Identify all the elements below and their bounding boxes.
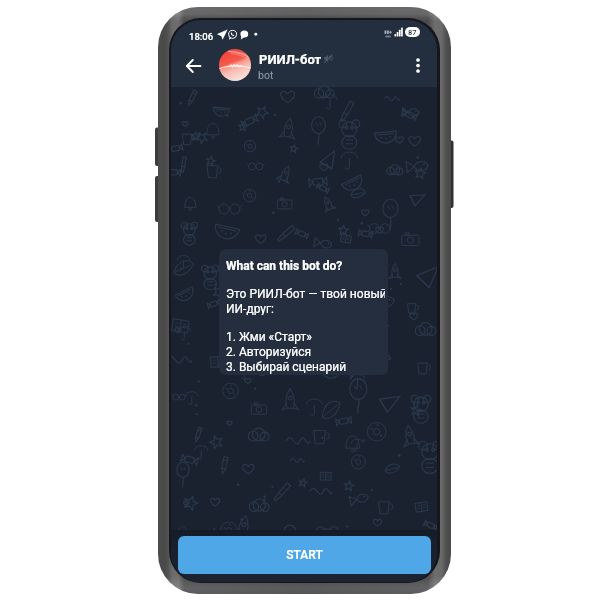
button[interactable]: START — [178, 536, 431, 574]
button[interactable]: Back — [180, 53, 206, 79]
button[interactable]: More options — [405, 52, 431, 78]
staticText: 1. Жми «Старт» 2. Авторизуйся 3. Выбирай… — [226, 330, 347, 373]
button[interactable]: Bot avatar — [219, 49, 251, 81]
button[interactable]: What can this bot do? — [219, 249, 388, 375]
staticText: 18:06 — [189, 31, 214, 42]
staticText: bot — [258, 69, 274, 81]
staticText: START — [286, 548, 323, 562]
staticText: Это РИИЛ-бот — твой новый ИИ-друг: — [226, 287, 385, 315]
staticText: РИИЛ-бот — [259, 52, 322, 66]
staticText: 87 — [408, 28, 417, 37]
staticText: What can this bot do? — [226, 259, 343, 273]
